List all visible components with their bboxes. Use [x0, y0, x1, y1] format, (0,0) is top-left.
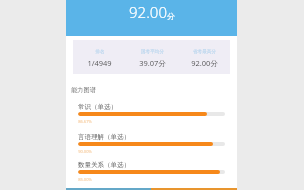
staticText: 85.00% [78, 177, 92, 182]
staticText: 国考平均分 [141, 49, 164, 55]
staticText: 省考最高分 [193, 49, 216, 55]
staticText: 92.00分 [191, 58, 218, 68]
button[interactable]: 言语理解（单选） [78, 133, 225, 154]
button[interactable]: 排名 [73, 40, 126, 74]
button[interactable]: 数量关系（单选） [78, 161, 225, 182]
staticText: 86.67% [78, 119, 92, 124]
staticText: 90.00% [78, 149, 92, 154]
button[interactable]: 国考平均分 [126, 40, 178, 74]
staticText: 1/4949 [87, 58, 112, 68]
staticText: 言语理解（单选） [78, 133, 130, 141]
staticText: 92.00 [129, 2, 167, 22]
staticText: 排名 [95, 49, 105, 55]
button[interactable]: 常识（单选） [78, 103, 225, 124]
staticText: 分 [167, 11, 175, 21]
staticText: 数量关系（单选） [78, 161, 130, 169]
staticText: 能力图谱 [71, 86, 96, 94]
button[interactable]: 省考最高分 [178, 40, 230, 74]
staticText: 常识（单选） [78, 103, 117, 111]
staticText: 39.07分 [139, 58, 166, 68]
